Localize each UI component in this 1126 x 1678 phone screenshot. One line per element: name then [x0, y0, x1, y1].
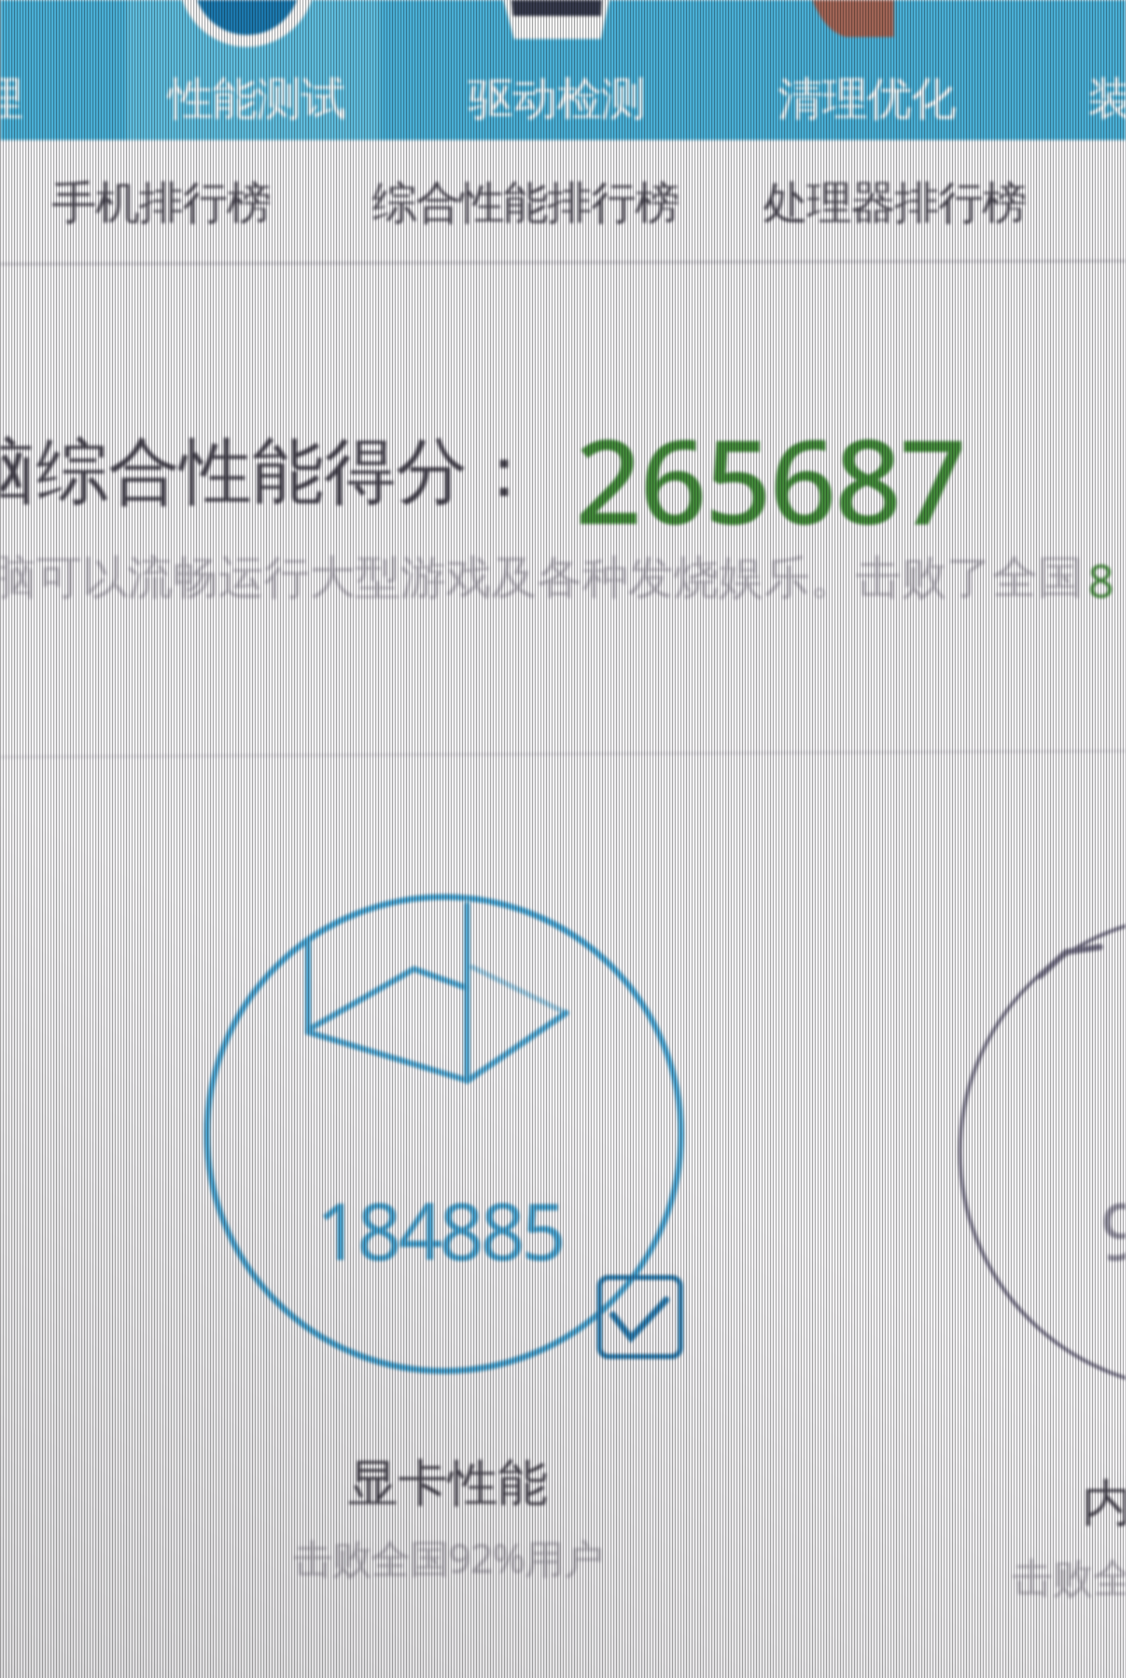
staticText: 手机排行榜 [52, 175, 271, 232]
button[interactable]: 驱动检测 [400, 0, 680, 140]
staticText: 装 [1088, 71, 1126, 128]
staticText: 内 [1082, 1472, 1126, 1535]
staticText: 综合性能排行榜 [372, 175, 679, 232]
staticText: 击败全国92%用户 [293, 1531, 603, 1585]
button[interactable]: 性能测试 [126, 0, 380, 140]
staticText: 8 [1088, 549, 1115, 611]
staticText: 清理优化 [778, 71, 956, 128]
staticText: 脑可以流畅运行大型游戏及各种发烧娱乐。击败了全国 [0, 549, 1083, 606]
button[interactable]: 硬件管理 [0, 0, 126, 140]
button[interactable]: 清理优化 [700, 0, 990, 140]
staticText: 击败全 [1012, 1553, 1126, 1604]
button[interactable]: 显卡性能 184885 分 [207, 897, 681, 1617]
staticText: 9 [1100, 1177, 1126, 1283]
staticText: 265687 [575, 399, 965, 558]
button[interactable]: 综合性能排行榜 [340, 150, 720, 260]
button[interactable]: 内存性能 [960, 915, 1126, 1635]
button[interactable]: 装机必备 [1010, 0, 1126, 140]
staticText: 驱动检测 [468, 71, 646, 128]
staticText: 性能测试 [168, 71, 346, 128]
staticText: 显卡性能 [348, 1452, 548, 1515]
staticText: 理 [0, 71, 23, 128]
button[interactable]: 处理器排行榜 [740, 150, 1060, 260]
staticText: 脑综合性能得分： [0, 427, 540, 518]
staticText: 184885 [316, 1177, 563, 1283]
button[interactable]: 手机排行榜 [20, 150, 320, 260]
staticText: 处理器排行榜 [763, 175, 1026, 232]
